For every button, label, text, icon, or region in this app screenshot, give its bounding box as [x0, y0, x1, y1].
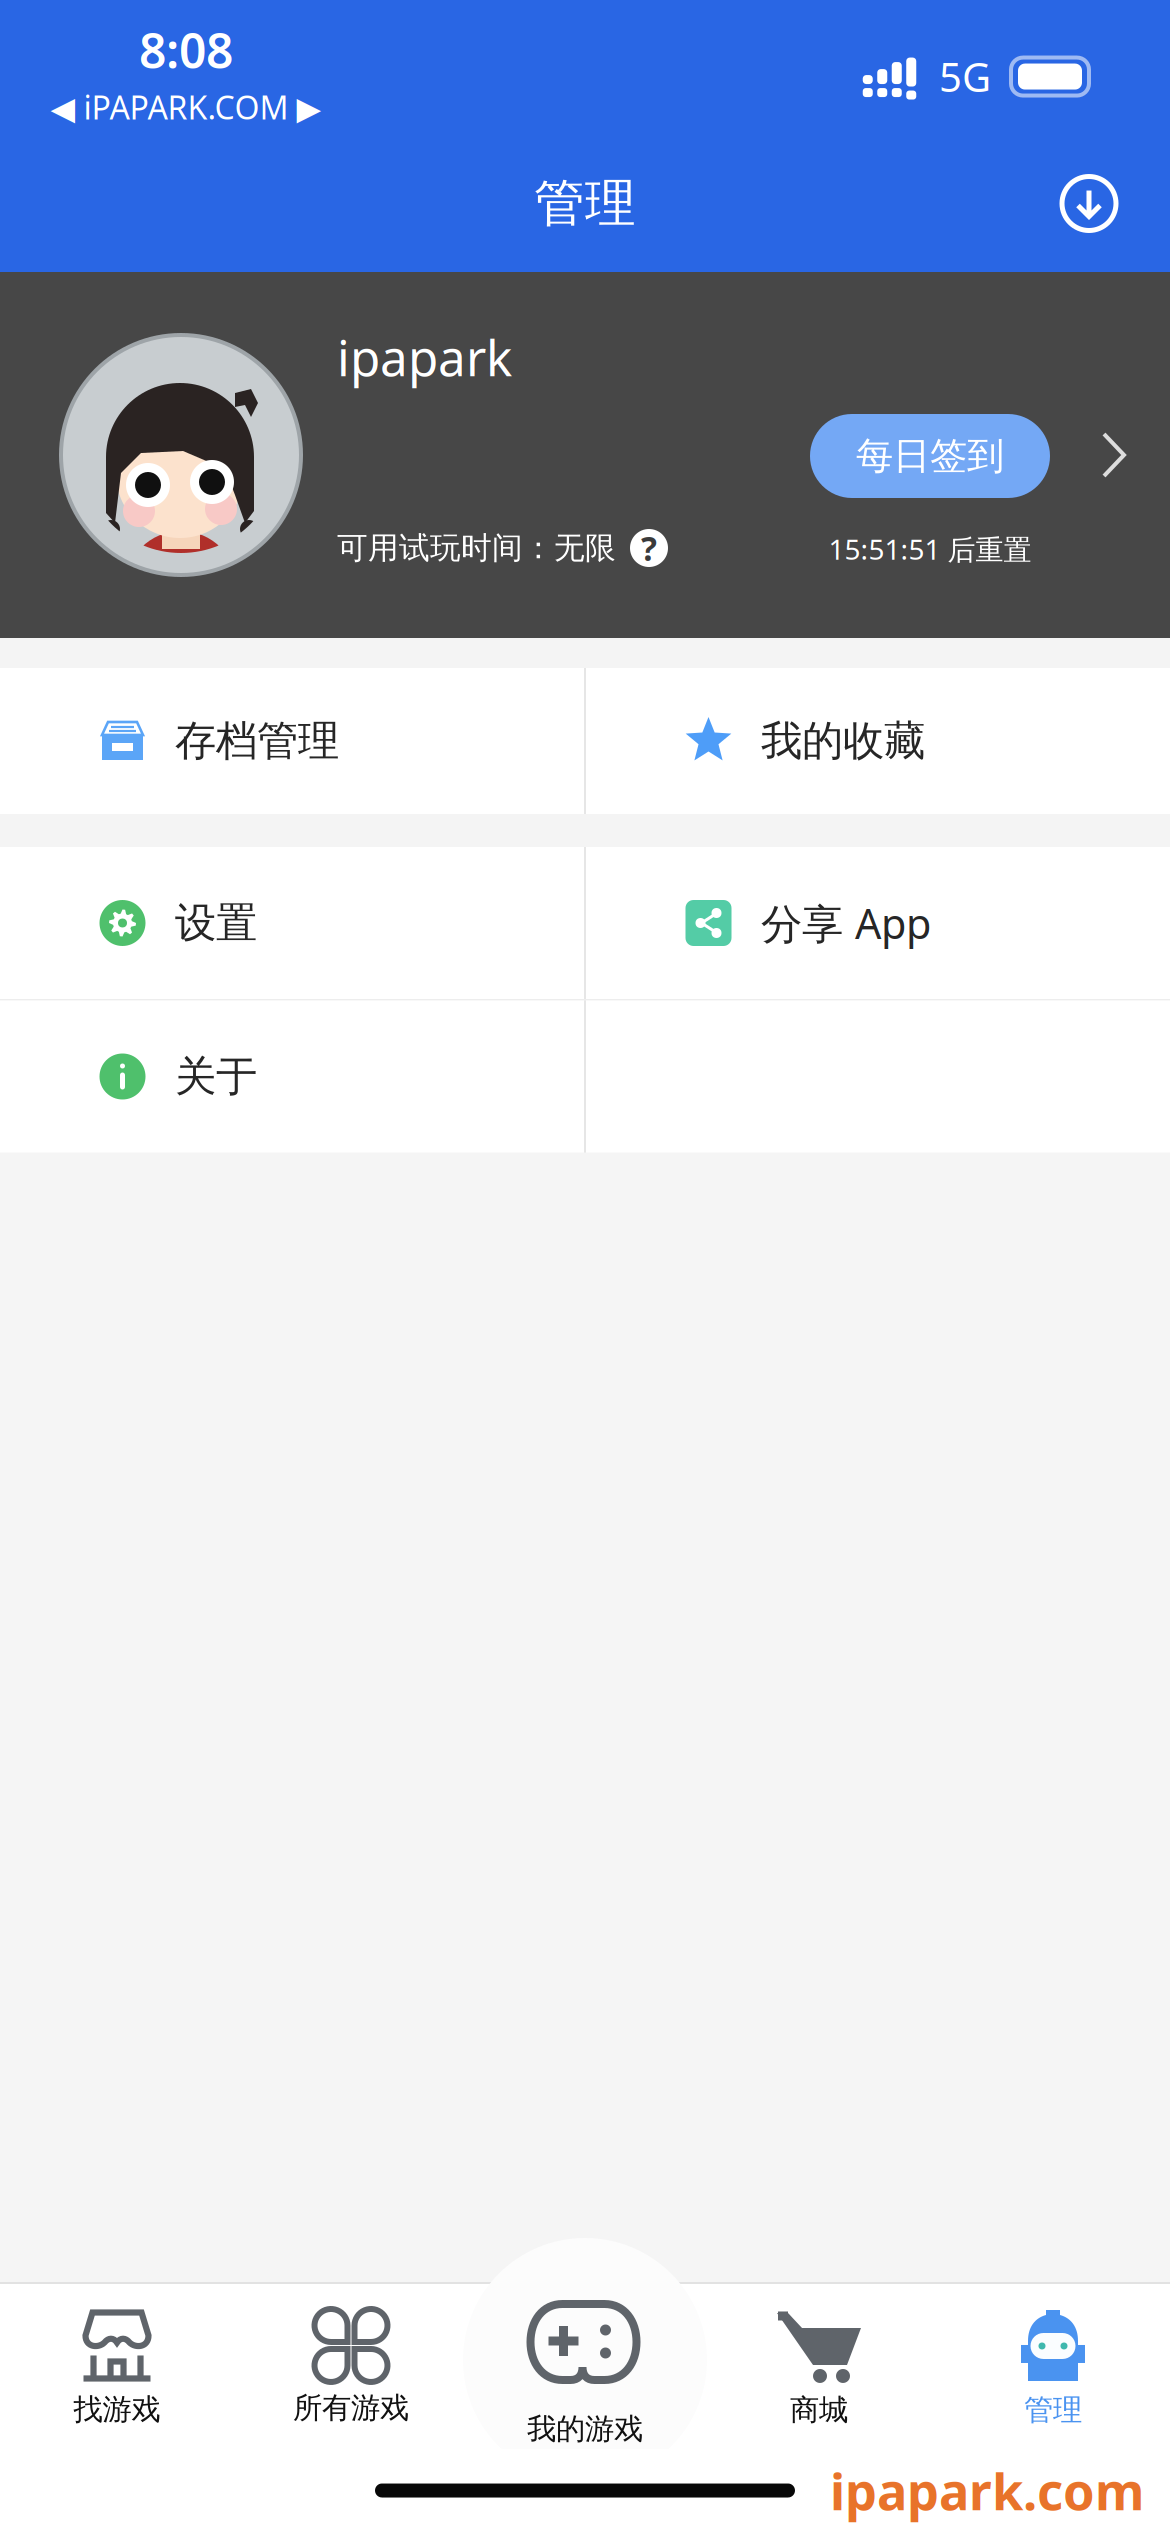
button[interactable]: 所有游戏	[234, 2293, 468, 2440]
staticText: 管理	[534, 172, 636, 235]
staticText: ipapark.com	[830, 2457, 1144, 2524]
staticText: 8:08	[139, 18, 233, 82]
button[interactable]: ipapark	[0, 272, 1170, 638]
staticText: 设置	[175, 898, 257, 948]
staticText: 每日签到	[856, 433, 1004, 479]
staticText: 找游戏	[73, 2391, 160, 2427]
staticText: 可用试玩时间：无限	[337, 529, 616, 567]
staticText: 15:51:51 后重置	[828, 530, 1031, 568]
staticText: 所有游戏	[293, 2390, 409, 2426]
staticText: 管理	[1024, 2392, 1082, 2428]
staticText: ipapark	[337, 324, 512, 390]
button[interactable]: 设置	[0, 847, 584, 999]
staticText: ◀ iPAPARK.COM ▶	[50, 86, 321, 128]
button[interactable]: 管理	[936, 2291, 1170, 2442]
staticText: 存档管理	[175, 716, 339, 766]
button[interactable]: 商城	[702, 2291, 936, 2442]
button[interactable]: Downloads	[1062, 176, 1170, 230]
staticText: 关于	[175, 1051, 257, 1102]
staticText: 我的收藏	[761, 716, 925, 766]
button[interactable]: 分享 App	[586, 847, 1170, 999]
staticText: 5G	[939, 50, 991, 103]
staticText: ?	[641, 526, 657, 570]
button[interactable]: 存档管理	[0, 668, 584, 814]
staticText: 分享 App	[761, 896, 931, 950]
button[interactable]: 我的收藏	[586, 668, 1170, 814]
staticText: 商城	[790, 2392, 848, 2428]
button[interactable]: 我的游戏	[463, 2238, 707, 2482]
button[interactable]: 找游戏	[0, 2291, 234, 2441]
staticText: 我的游戏	[527, 2411, 643, 2447]
button[interactable]: 关于	[0, 1000, 584, 1152]
